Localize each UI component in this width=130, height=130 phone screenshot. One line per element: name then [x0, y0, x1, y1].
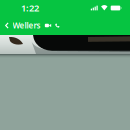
staticText: Wellers	[12, 20, 40, 31]
button[interactable]: Wellers	[0, 16, 42, 35]
staticText: 1:22	[21, 2, 39, 14]
button[interactable]: Video call	[44, 16, 51, 35]
button[interactable]: Voice call	[54, 16, 60, 35]
